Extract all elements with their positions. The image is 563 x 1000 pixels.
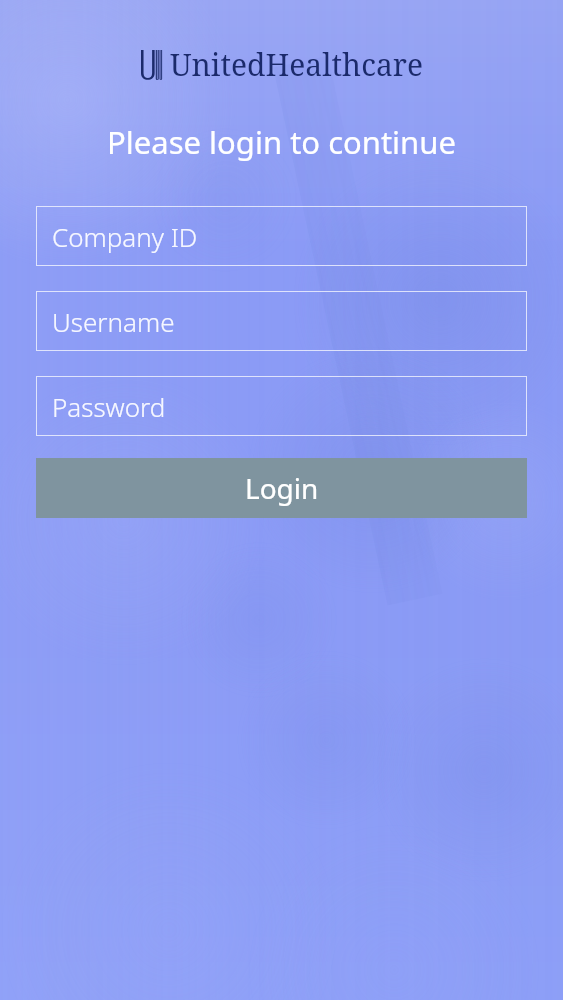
button[interactable]: Company ID (36, 206, 527, 266)
staticText: Company ID (52, 219, 198, 254)
button[interactable]: Login (36, 458, 527, 518)
other: UnitedHealthcare (0, 44, 563, 85)
staticText: Password (52, 389, 166, 424)
button[interactable]: Username (36, 291, 527, 351)
staticText: Please login to continue (0, 121, 563, 163)
staticText: Username (52, 304, 175, 339)
button[interactable]: Password (36, 376, 527, 436)
staticText: Login (245, 469, 319, 507)
staticText: UnitedHealthcare (170, 44, 423, 85)
